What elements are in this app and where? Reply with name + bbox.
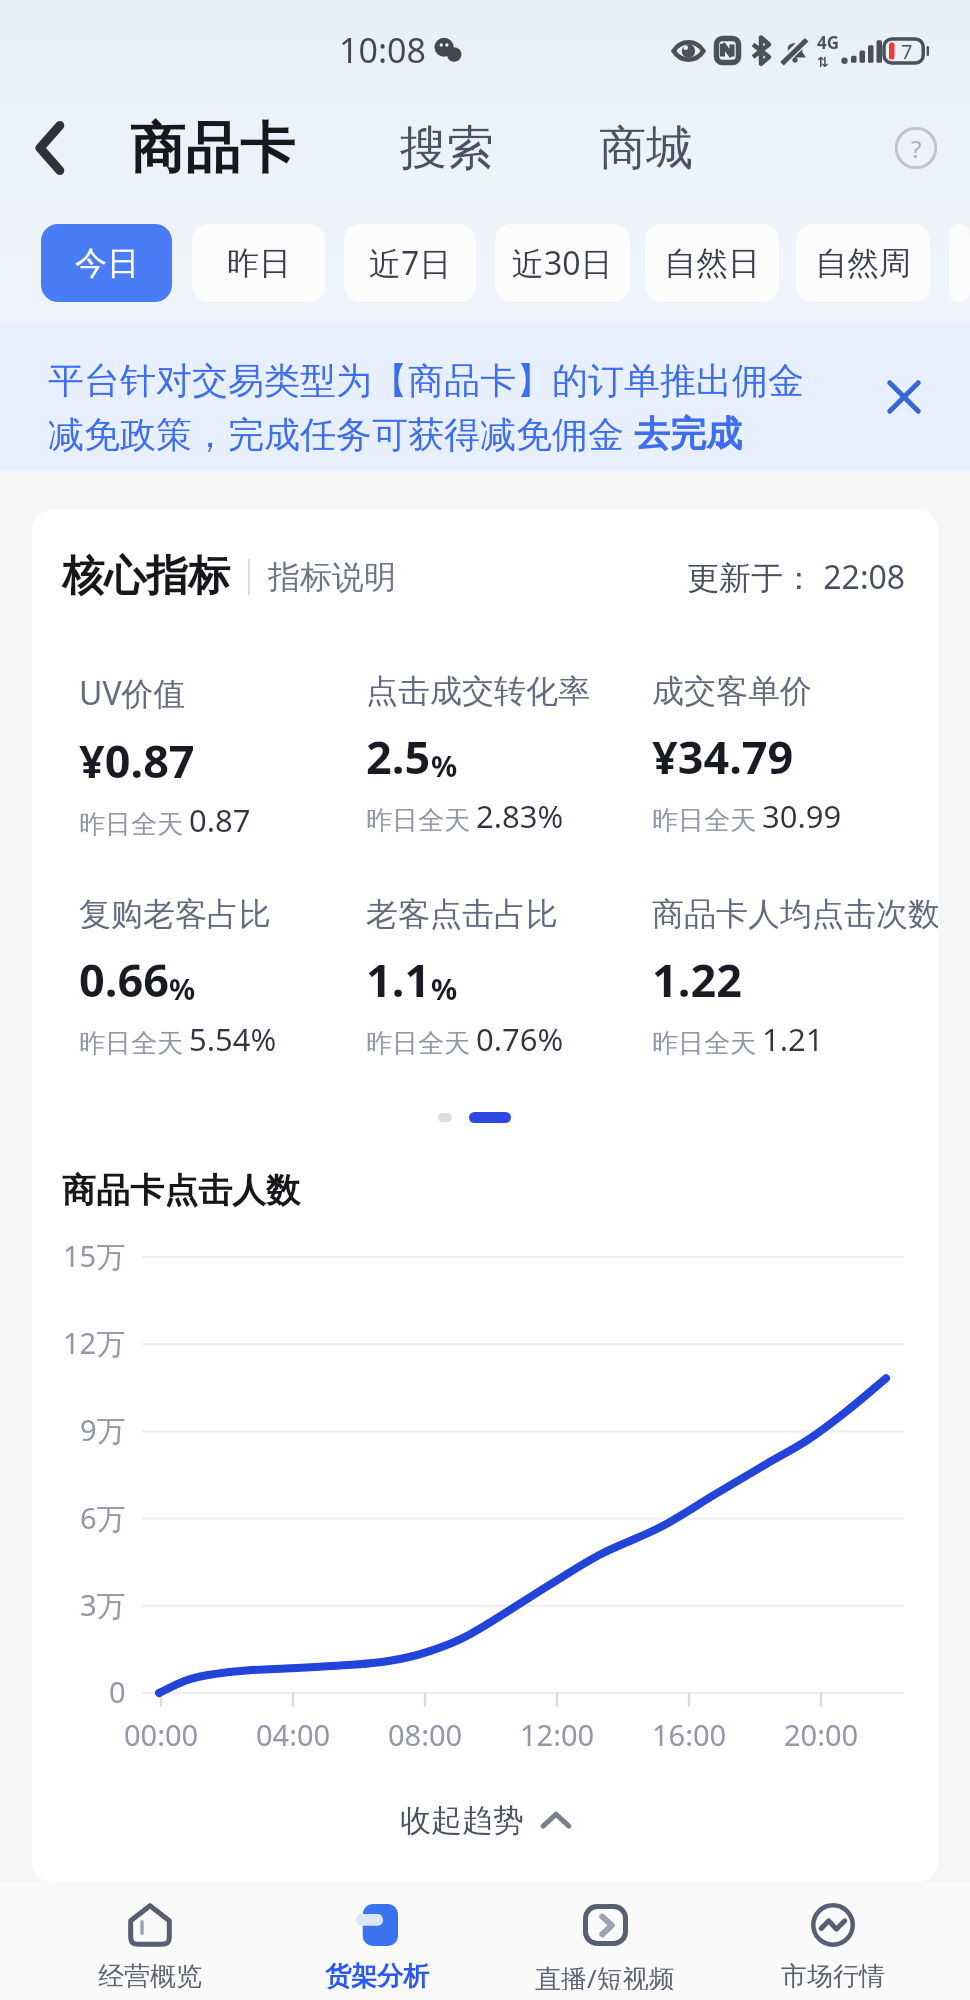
staticText: ? (911, 132, 922, 165)
staticText: 12:00 (520, 1715, 595, 1754)
staticText: 0 (109, 1672, 126, 1711)
button[interactable]: 今日 (41, 224, 172, 302)
staticText: 昨日全天 (652, 804, 756, 837)
staticText: 指标说明 (268, 557, 396, 597)
staticText: 老客点击占比 (366, 894, 558, 934)
button[interactable]: 昨日 (192, 224, 325, 302)
staticText: 昨日 (227, 243, 291, 283)
staticText: 近30日 (512, 241, 613, 285)
staticText: 搜索 (400, 119, 494, 178)
staticText: 市场行情 (781, 1960, 885, 1990)
staticText: 昨日全天 (366, 804, 470, 837)
staticText: 经营概览 (98, 1960, 202, 1990)
button[interactable]: 货架分析 (263, 1882, 491, 2000)
staticText: 0.87 (189, 799, 251, 841)
staticText: 1.21 (762, 1018, 824, 1060)
button[interactable]: 近30日 (495, 224, 630, 302)
button[interactable]: 收起趋势 (32, 1788, 938, 1852)
staticText: 16:00 (652, 1715, 727, 1754)
button[interactable]: 商品卡 (130, 114, 295, 183)
staticText: 自然日 (664, 243, 760, 283)
staticText: 1.22 (652, 949, 742, 1010)
staticText: 商品卡 (130, 114, 295, 183)
staticText: 2.83% (476, 795, 564, 837)
staticText: % (431, 969, 458, 1008)
staticText: 核心指标 (62, 550, 230, 603)
button[interactable]: 经营概览 (36, 1882, 263, 2000)
staticText: 20:00 (784, 1715, 859, 1754)
button[interactable]: Back (16, 115, 82, 181)
button[interactable]: 近7日 (344, 224, 476, 302)
staticText: 12万 (63, 1323, 126, 1363)
button[interactable]: Help (888, 120, 944, 176)
staticText: 平台针对交易类型为【商品卡】的订单推出佣金 (48, 358, 804, 403)
button[interactable]: 自然日 (645, 224, 779, 302)
button[interactable]: 商城 (599, 119, 693, 178)
staticText: 9万 (80, 1410, 126, 1450)
staticText: 货架分析 (325, 1960, 429, 1990)
staticText: 昨日全天 (366, 1027, 470, 1060)
staticText: 30.99 (762, 795, 842, 837)
staticText: % (431, 746, 458, 785)
staticText: ¥0.87 (79, 730, 195, 791)
staticText: 15万 (63, 1236, 126, 1276)
staticText: 00:00 (124, 1715, 199, 1754)
staticText: 昨日全天 (79, 808, 183, 841)
staticText: 5.54% (189, 1018, 277, 1060)
staticText: 2.5 (366, 726, 431, 787)
staticText: 4G (817, 31, 840, 54)
staticText: 点击成交转化率 (366, 671, 590, 711)
button[interactable]: 自然周 (796, 224, 930, 302)
staticText: 3万 (80, 1585, 126, 1625)
staticText: 0.76% (476, 1018, 564, 1060)
staticText: 7 (901, 38, 913, 65)
staticText: 去完成 (634, 411, 742, 456)
staticText: 收起趋势 (400, 1801, 524, 1840)
staticText: 昨日全天 (79, 1027, 183, 1060)
staticText: 直播/短视频 (535, 1960, 675, 1990)
button[interactable]: Close banner (874, 367, 934, 427)
staticText: 成交客单价 (652, 671, 812, 711)
staticText: 复购老客占比 (79, 894, 271, 934)
staticText: ¥34.79 (652, 726, 794, 787)
staticText: % (169, 969, 196, 1008)
button[interactable]: 市场行情 (719, 1882, 947, 2000)
button[interactable] (949, 224, 970, 302)
staticText: 减免政策，完成任务可获得减免佣金 (48, 409, 634, 458)
staticText: 1.1 (366, 949, 431, 1010)
staticText: 更新于： 22:08 (687, 555, 906, 599)
staticText: 自然周 (815, 243, 911, 283)
staticText: 商品卡点击人数 (62, 1169, 300, 1212)
button[interactable]: 搜索 (400, 119, 494, 178)
button[interactable]: 指标说明 (268, 557, 396, 597)
staticText: 商品卡人均点击次数 (652, 894, 938, 934)
staticText: 今日 (75, 243, 139, 283)
staticText: ⇅ (817, 54, 829, 70)
staticText: 04:00 (256, 1715, 331, 1754)
staticText: 08:00 (388, 1715, 463, 1754)
staticText: 6万 (80, 1498, 126, 1538)
staticText: 昨日全天 (652, 1027, 756, 1060)
staticText: 10:08 (339, 27, 426, 73)
staticText: 近7日 (369, 241, 452, 285)
staticText: 商城 (599, 119, 693, 178)
button[interactable]: 直播/短视频 (491, 1882, 719, 2000)
staticText: UV价值 (79, 671, 186, 715)
staticText: 0.66 (79, 949, 169, 1010)
